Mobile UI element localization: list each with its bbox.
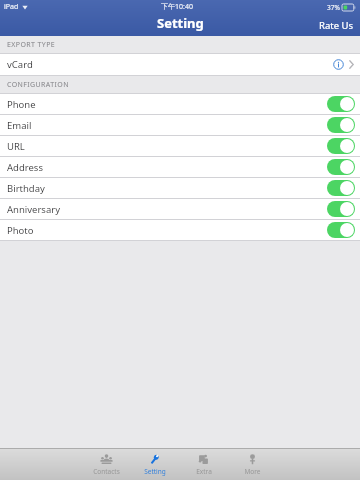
button[interactable]: Email [0, 115, 360, 135]
button[interactable]: More [228, 449, 277, 480]
staticText: URL [7, 140, 25, 153]
staticText: Contacts [93, 467, 120, 476]
staticText: Photo [7, 224, 34, 237]
button[interactable]: Setting [130, 449, 179, 480]
staticText: CONFIGURATION [7, 80, 69, 90]
button[interactable]: Extra [179, 449, 228, 480]
staticText: Birthday [7, 182, 45, 195]
staticText: Setting [144, 467, 166, 476]
staticText: Anniversary [7, 203, 61, 216]
staticText: vCard [7, 58, 33, 71]
staticText: Setting [157, 14, 204, 32]
staticText: 37% [327, 3, 340, 12]
button[interactable]: Contacts [82, 449, 130, 480]
staticText: EXPORT TYPE [7, 40, 56, 50]
staticText: Email [7, 119, 32, 132]
other: Info [333, 59, 344, 70]
staticText: 下午10:40 [161, 2, 193, 12]
button[interactable]: Address [0, 157, 360, 177]
button[interactable]: Phone [0, 94, 360, 114]
staticText: Extra [196, 467, 212, 476]
button[interactable]: Anniversary [0, 199, 360, 219]
staticText: More [244, 467, 261, 476]
button[interactable]: Birthday [0, 178, 360, 198]
button[interactable]: URL [0, 136, 360, 156]
button[interactable]: Photo [0, 220, 360, 240]
staticText: iPad [4, 2, 19, 12]
button[interactable]: Rate Us [312, 15, 360, 36]
button[interactable]: vCard [0, 54, 360, 75]
staticText: Rate Us [319, 19, 353, 32]
staticText: Address [7, 161, 43, 174]
staticText: Phone [7, 98, 36, 111]
